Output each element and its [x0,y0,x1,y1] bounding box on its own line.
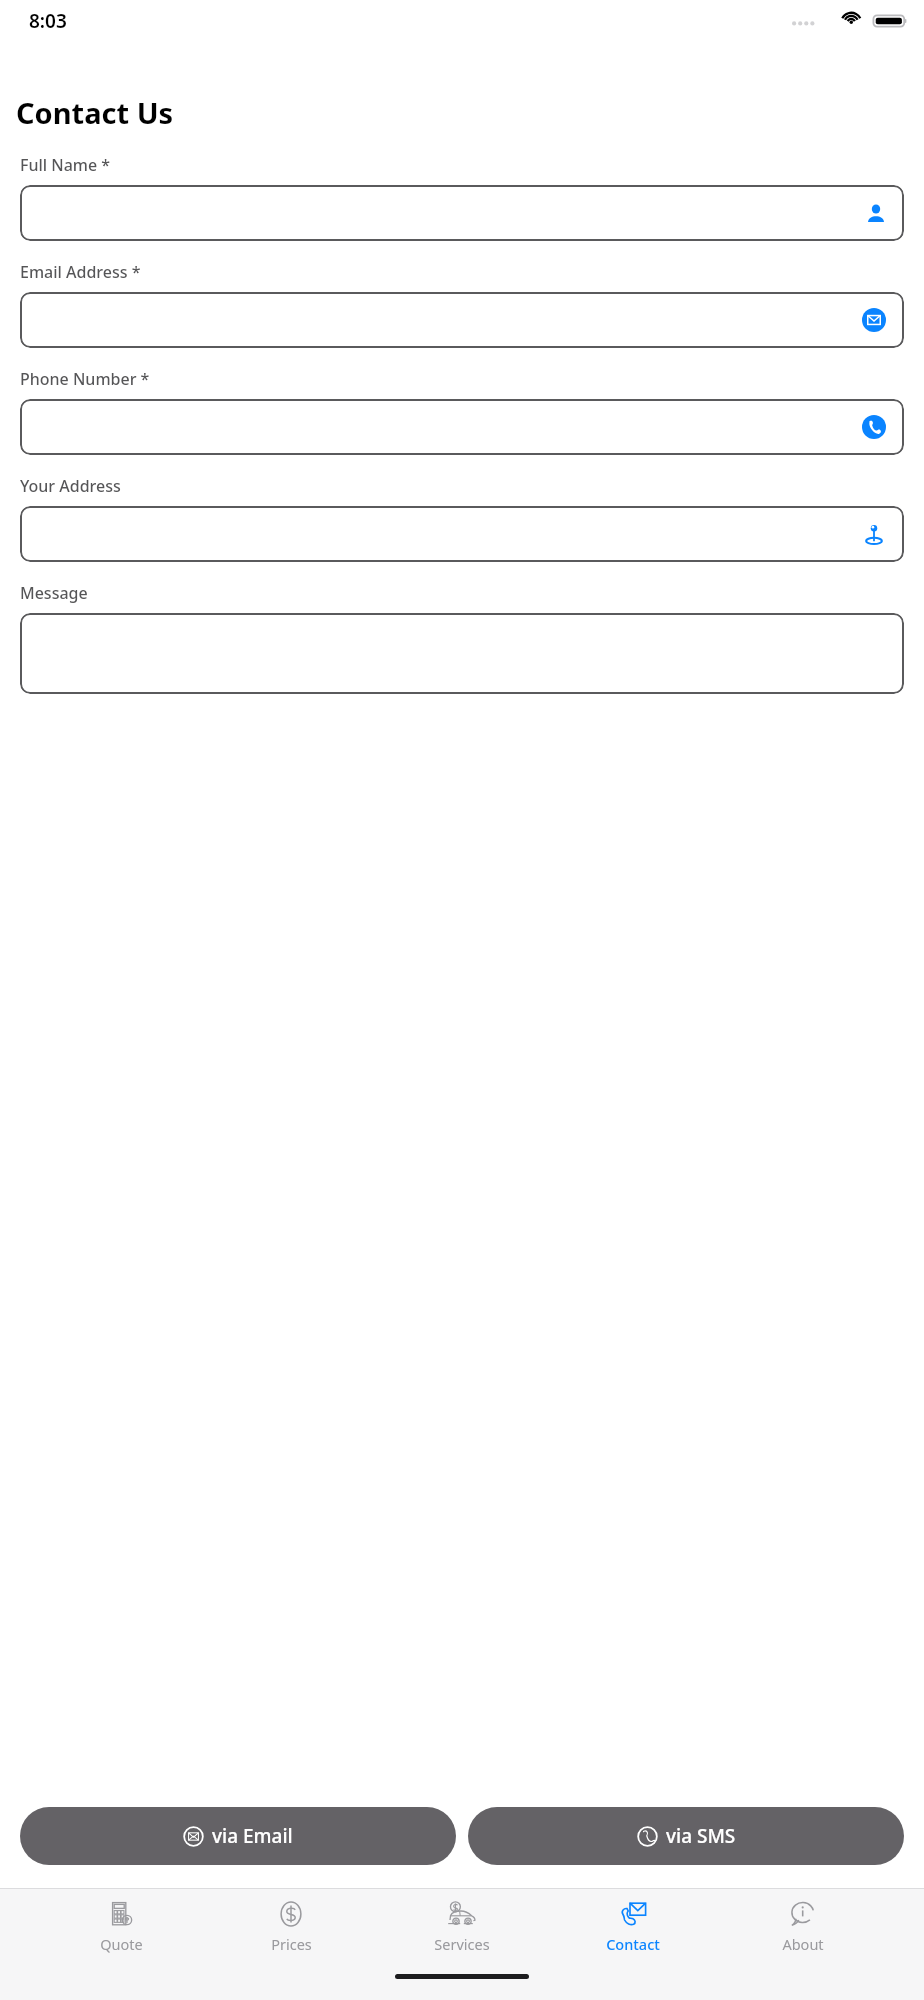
staticText: Prices [271,1934,312,1954]
button[interactable]: Prices [241,1895,341,1958]
button[interactable]: Quote [71,1895,171,1958]
staticText: Full Name * [20,154,111,176]
staticText: Quote [100,1934,143,1954]
staticText: Phone Number * [20,368,150,390]
button[interactable] [20,185,904,241]
staticText: Message [20,582,88,604]
button[interactable]: About [753,1895,853,1958]
staticText: Contact [606,1934,660,1954]
button[interactable] [20,613,904,694]
staticText: via SMS [666,1823,736,1849]
staticText: Email Address * [20,261,141,283]
staticText: 8:03 [29,8,67,34]
button[interactable]: via SMS [468,1807,904,1865]
staticText: Services [434,1934,490,1954]
button[interactable] [20,292,904,348]
button[interactable]: Contact [583,1895,683,1958]
staticText: About [782,1934,824,1954]
staticText: Contact Us [16,93,174,132]
staticText: via Email [212,1823,293,1849]
button[interactable]: Services [412,1895,512,1958]
staticText: Your Address [20,475,121,497]
button[interactable] [20,506,904,562]
button[interactable]: via Email [20,1807,456,1865]
button[interactable] [20,399,904,455]
